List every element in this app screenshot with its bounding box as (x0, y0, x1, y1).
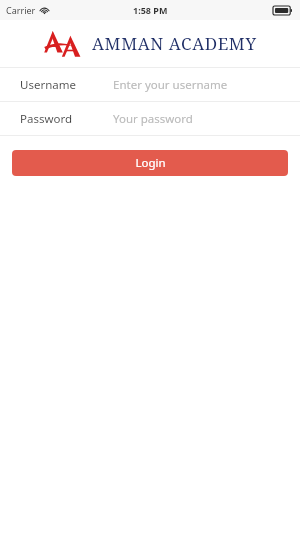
staticText: 1:58 PM (133, 4, 168, 16)
staticText: Carrier (6, 4, 36, 16)
staticText: Your password (113, 111, 193, 127)
staticText: Username (20, 77, 113, 93)
staticText: Password (20, 111, 113, 127)
staticText: AMMAN ACADEMY (92, 32, 257, 55)
button[interactable]: Username (0, 68, 300, 101)
staticText: Enter your username (113, 77, 228, 93)
button[interactable]: Password (0, 102, 300, 135)
staticText: Login (135, 155, 166, 171)
button[interactable]: Login (12, 150, 288, 176)
